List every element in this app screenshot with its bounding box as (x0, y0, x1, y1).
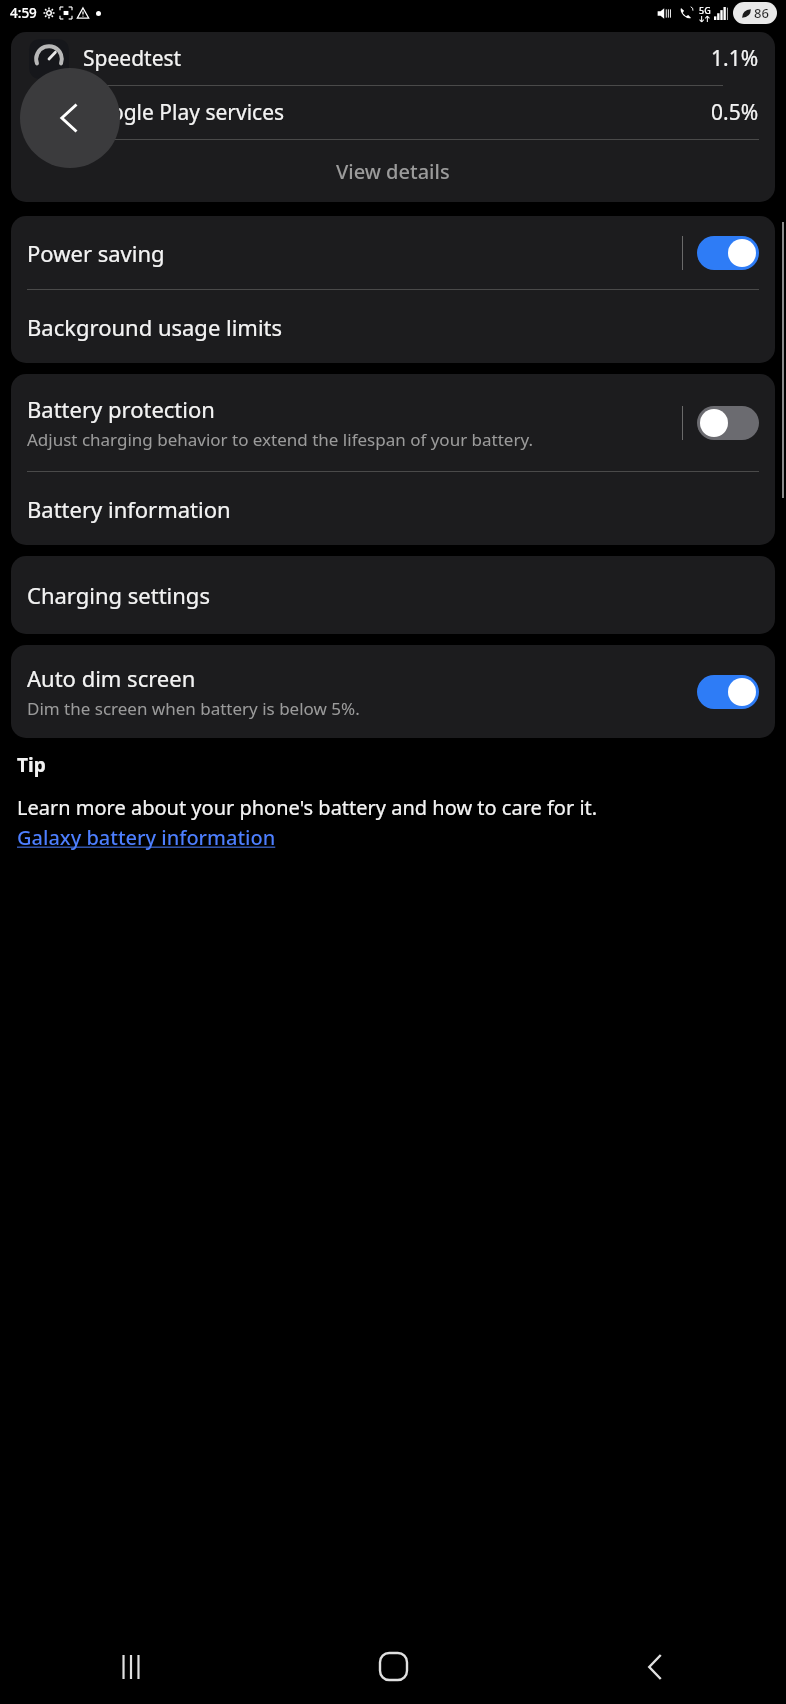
staticText: 0.5% (711, 98, 759, 127)
staticText: Battery protection (27, 394, 215, 424)
button[interactable]: Battery protection (11, 374, 775, 471)
staticText: 1.1% (711, 44, 759, 73)
staticText: 4:59 (10, 4, 37, 22)
button[interactable]: Power saving (11, 216, 775, 289)
staticText: Auto dim screen (27, 663, 196, 693)
button[interactable]: Speedtest (11, 32, 775, 85)
button[interactable]: Battery information (11, 472, 775, 545)
button[interactable]: Charging settings (11, 556, 775, 634)
button[interactable]: Home (262, 1629, 524, 1704)
staticText: Adjust charging behavior to extend the l… (27, 428, 534, 451)
button[interactable]: Auto dim screen (11, 645, 775, 738)
button[interactable]: Recent apps (0, 1629, 262, 1704)
button[interactable]: Back (524, 1629, 786, 1704)
staticText: Learn more about your phone's battery an… (17, 794, 598, 821)
staticText: Google Play services (83, 98, 285, 127)
staticText: 86 (754, 4, 769, 22)
button[interactable]: Toggle on (697, 236, 759, 270)
button[interactable]: View details (11, 140, 775, 202)
button[interactable]: Toggle on (697, 675, 759, 709)
staticText: Power saving (27, 238, 165, 268)
staticText: Tip (17, 752, 46, 778)
staticText: Speedtest (83, 44, 182, 73)
staticText: Battery information (27, 494, 231, 524)
button[interactable]: Background usage limits (11, 290, 775, 363)
staticText: Dim the screen when battery is below 5%. (27, 697, 360, 720)
button[interactable]: Toggle off (697, 406, 759, 440)
button[interactable]: Google Play services (11, 86, 775, 139)
staticText: View details (336, 158, 450, 185)
staticText: Charging settings (27, 580, 210, 610)
button[interactable]: Back (20, 68, 120, 168)
button[interactable]: Galaxy battery information (17, 824, 276, 851)
staticText: Background usage limits (27, 312, 283, 342)
staticText: 5G (699, 4, 711, 16)
